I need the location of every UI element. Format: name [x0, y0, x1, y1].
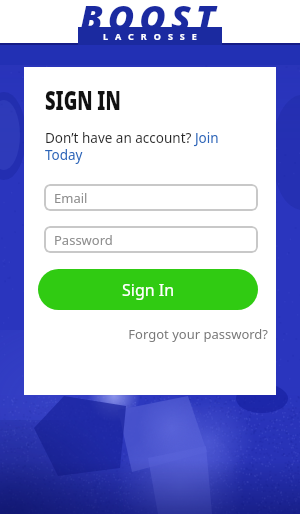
staticText: BOOST [80, 0, 221, 36]
staticText: Sign In [122, 279, 175, 301]
staticText: LACROSSE [103, 30, 204, 42]
button[interactable]: Password [44, 226, 258, 253]
button[interactable]: Forgot your password? [128, 325, 268, 343]
staticText: SIGN IN [45, 81, 121, 118]
staticText: Password [54, 231, 113, 249]
button[interactable]: Don’t have an account? Join Today [45, 129, 250, 164]
button[interactable]: Sign In [38, 269, 258, 310]
staticText: Email [54, 189, 88, 207]
button[interactable]: Email [44, 184, 258, 211]
